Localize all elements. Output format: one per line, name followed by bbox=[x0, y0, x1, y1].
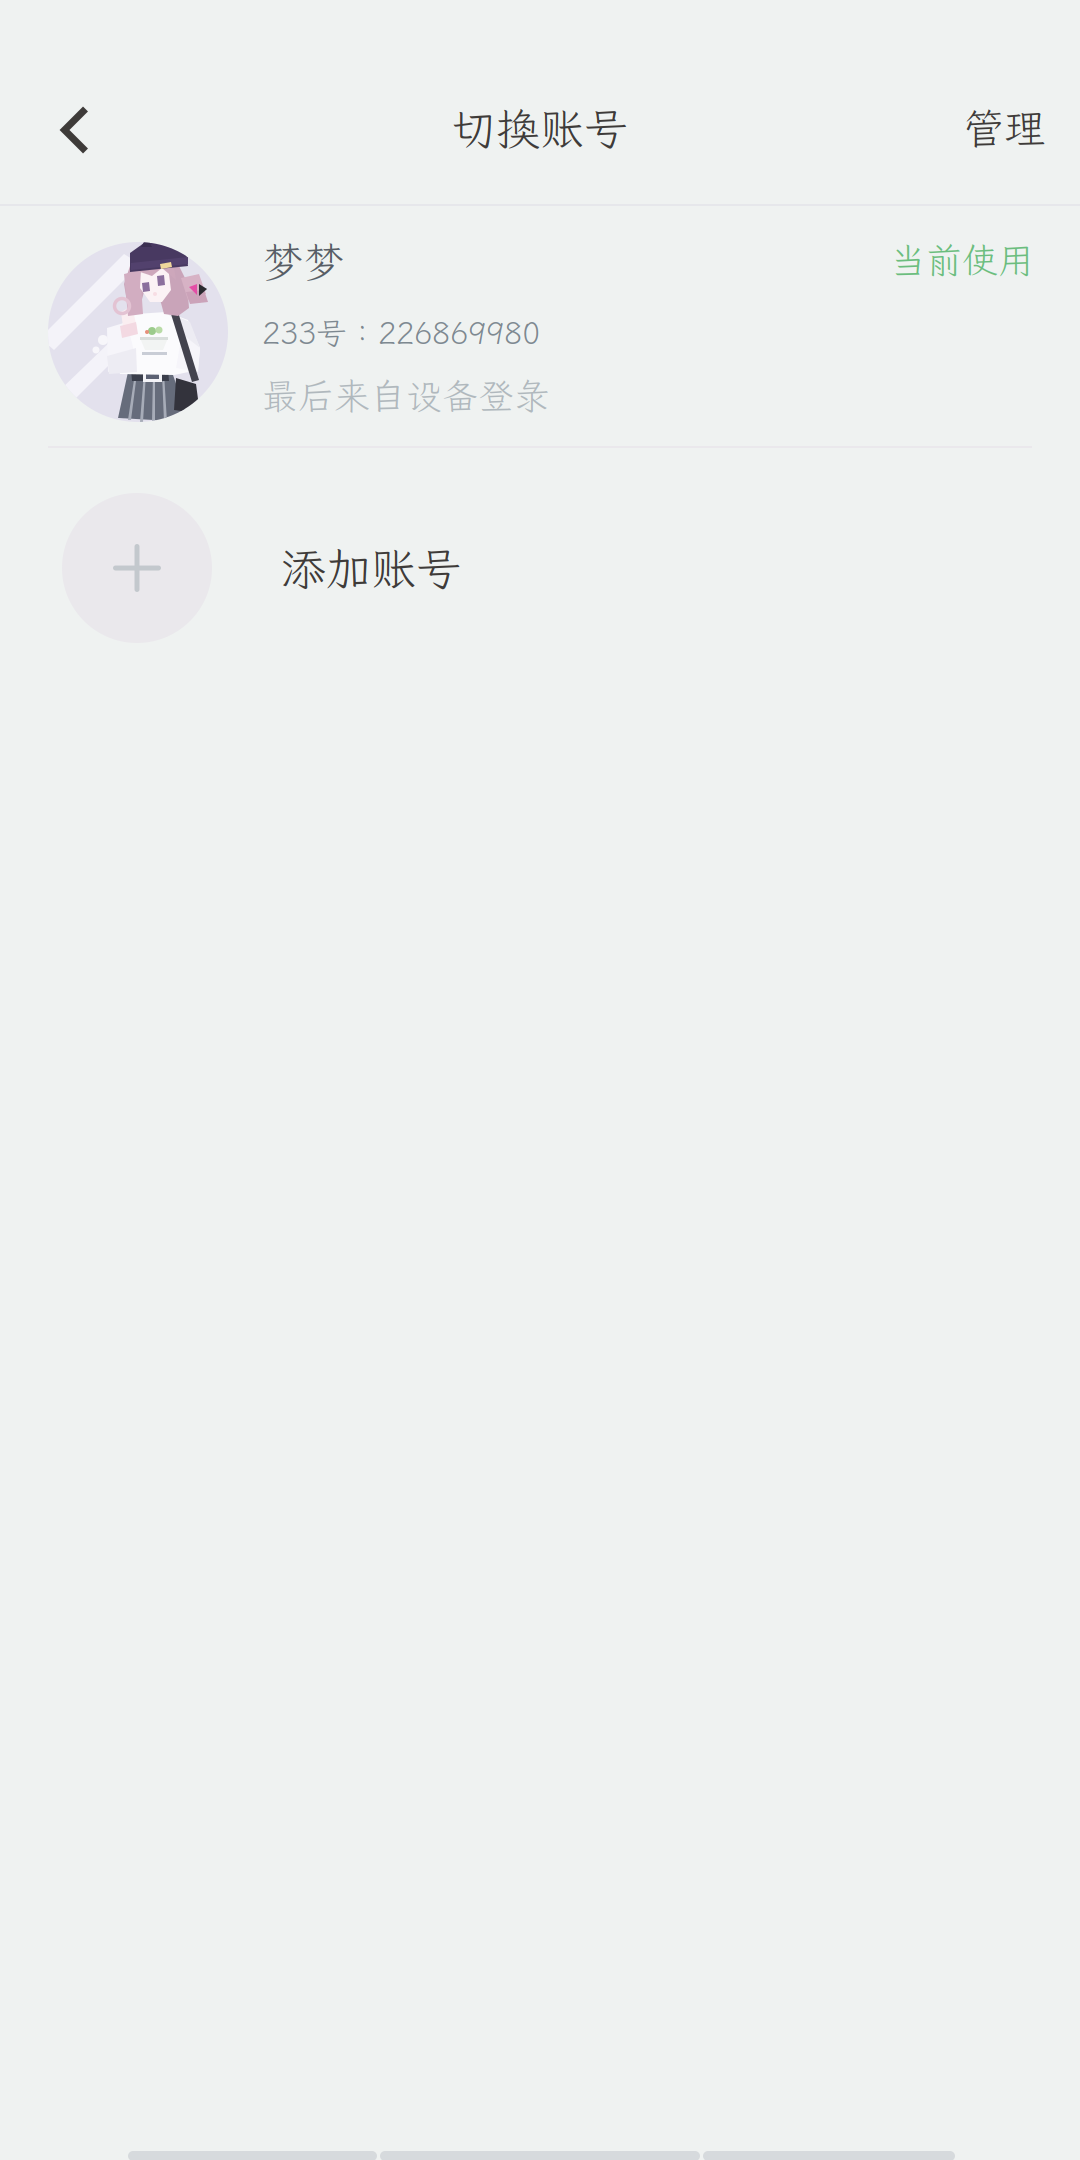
staticText: 切换账号 bbox=[452, 99, 628, 157]
button[interactable]: 梦梦 bbox=[0, 206, 1080, 446]
staticText: 管理 bbox=[963, 101, 1045, 155]
staticText: 最后来自设备登录 bbox=[262, 372, 550, 419]
staticText: 当前使用 bbox=[890, 236, 1034, 283]
staticText: 添加账号 bbox=[281, 538, 461, 598]
button[interactable]: Back bbox=[0, 60, 125, 204]
staticText: 梦梦 bbox=[262, 234, 344, 288]
button[interactable]: 管理 bbox=[923, 60, 1080, 204]
button[interactable]: 添加账号 bbox=[0, 448, 1080, 668]
staticText: 233号：226869980 bbox=[262, 312, 540, 353]
